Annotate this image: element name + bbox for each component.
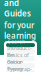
button[interactable]: Colour theory (6, 63, 35, 68)
staticText: Basics of design (7, 51, 29, 66)
button[interactable]: Basics of design (6, 56, 35, 61)
staticText: Theory and Guides (4, 0, 31, 19)
staticText: Typography (7, 65, 32, 72)
staticText: Search topics (8, 38, 25, 52)
staticText: Introduction (7, 44, 32, 59)
staticText: for your learning (4, 20, 36, 41)
button[interactable]: Introduction (6, 49, 35, 54)
staticText: Colour theory (7, 58, 23, 72)
button[interactable]: Typography (6, 70, 35, 72)
